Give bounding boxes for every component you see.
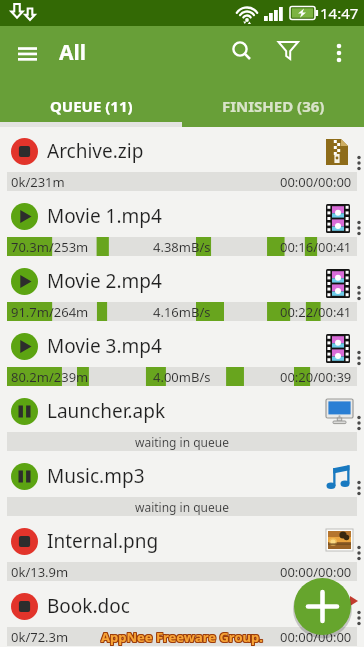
button[interactable]: Movie 2.mp4 xyxy=(0,257,364,322)
staticText: AppNee Freeware Group. xyxy=(101,628,263,646)
staticText: AppNee Freeware Group. xyxy=(100,628,262,646)
staticText: QUEUE (11) xyxy=(50,96,133,116)
staticText: 70.3m/253m xyxy=(11,238,89,256)
staticText: 4.16mB/s xyxy=(153,303,211,321)
staticText: 91.7m/264m xyxy=(11,303,89,321)
staticText: Music.mp3 xyxy=(47,463,145,489)
button[interactable]: FINISHED (36) xyxy=(182,78,364,127)
button[interactable] xyxy=(330,39,350,66)
staticText: AppNee Freeware Group. xyxy=(100,627,262,645)
button[interactable] xyxy=(10,39,46,67)
staticText: AppNee Freeware Group. xyxy=(102,627,264,645)
staticText: AppNee Freeware Group. xyxy=(100,629,262,647)
staticText: AppNee Freeware Group. xyxy=(102,629,264,647)
button[interactable]: Movie 1.mp4 xyxy=(0,192,364,257)
staticText: 00:16/00:41 xyxy=(280,238,352,256)
staticText: 4.00mB/s xyxy=(153,368,211,386)
button[interactable]: QUEUE (11) xyxy=(0,78,182,127)
staticText: 00:22/00:41 xyxy=(280,303,352,321)
staticText: 00:00/00:00 xyxy=(280,628,352,646)
button[interactable]: Book.doc xyxy=(0,582,364,647)
staticText: 4.38mB/s xyxy=(153,238,211,256)
button[interactable] xyxy=(276,39,302,65)
staticText: 80.2m/239m xyxy=(11,368,89,386)
staticText: Launcher.apk xyxy=(47,398,166,424)
staticText: 0k/13.9m xyxy=(11,563,69,581)
staticText: AppNee Freeware Group. xyxy=(101,627,263,645)
staticText: Internal.png xyxy=(47,528,159,554)
staticText: Book.doc xyxy=(47,593,130,619)
staticText: 14:47 xyxy=(320,3,359,23)
staticText: Movie 3.mp4 xyxy=(47,333,162,359)
staticText: Archive.zip xyxy=(47,138,144,164)
staticText: 00:20/00:39 xyxy=(280,368,352,386)
button[interactable] xyxy=(294,578,351,635)
staticText: waiting in queue xyxy=(135,499,229,515)
button[interactable]: Launcher.apk xyxy=(0,387,364,452)
button[interactable]: Archive.zip xyxy=(0,127,364,192)
staticText: FINISHED (36) xyxy=(222,96,325,116)
staticText: 0k/231m xyxy=(11,173,65,191)
staticText: All xyxy=(59,38,87,67)
staticText: 0k/72.3m xyxy=(11,628,69,646)
staticText: Movie 2.mp4 xyxy=(47,268,162,294)
staticText: AppNee Freeware Group. xyxy=(102,628,264,646)
button[interactable]: Internal.png xyxy=(0,517,364,582)
staticText: AppNee Freeware Group. xyxy=(101,629,263,647)
staticText: waiting in queue xyxy=(135,434,229,450)
button[interactable]: Music.mp3 xyxy=(0,452,364,517)
staticText: 00:00/00:00 xyxy=(280,173,352,191)
button[interactable] xyxy=(228,38,255,65)
staticText: Movie 1.mp4 xyxy=(47,203,162,229)
staticText: 00:00/00:00 xyxy=(280,563,352,581)
button[interactable]: Movie 3.mp4 xyxy=(0,322,364,387)
